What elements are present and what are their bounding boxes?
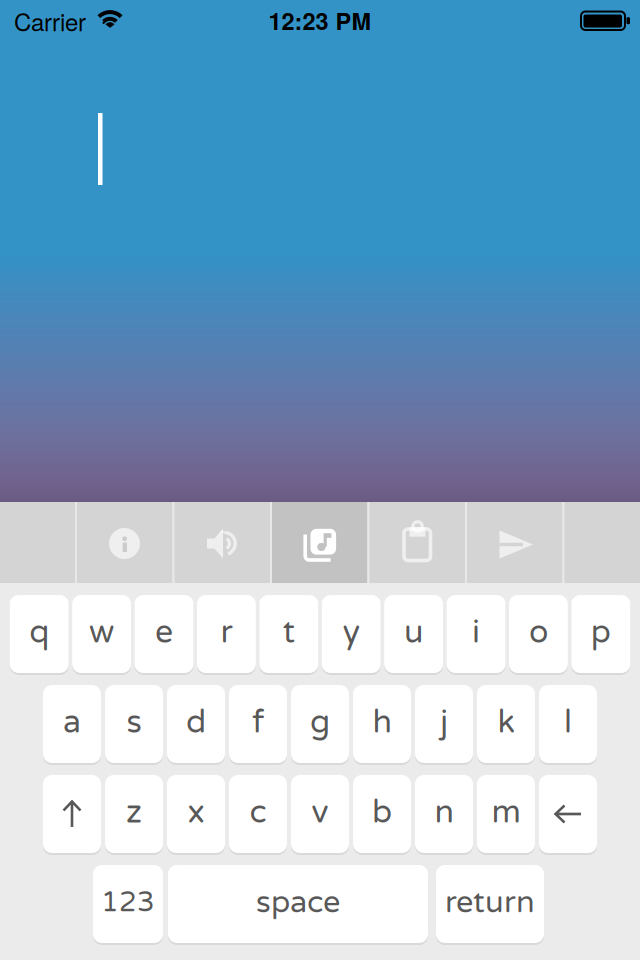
button[interactable]: m: [477, 775, 535, 853]
staticText: k: [497, 703, 514, 742]
button[interactable]: Volume: [172, 502, 270, 583]
button[interactable]: c: [229, 775, 287, 853]
button[interactable]: f: [229, 685, 287, 763]
staticText: v: [311, 793, 328, 832]
button[interactable]: h: [353, 685, 411, 763]
button[interactable]: r: [197, 595, 256, 673]
staticText: a: [63, 703, 81, 742]
button[interactable]: return: [436, 865, 544, 943]
button[interactable]: x: [167, 775, 225, 853]
button[interactable]: j: [415, 685, 473, 763]
staticText: l: [564, 703, 572, 742]
button[interactable]: Shift: [43, 775, 101, 853]
staticText: m: [491, 793, 520, 832]
button[interactable]: g: [291, 685, 349, 763]
button[interactable]: Send: [465, 502, 562, 583]
staticText: i: [472, 613, 480, 652]
staticText: g: [310, 703, 330, 742]
staticText: b: [372, 793, 392, 832]
staticText: x: [187, 793, 204, 832]
staticText: p: [591, 613, 611, 652]
staticText: d: [186, 703, 206, 742]
staticText: r: [220, 613, 232, 652]
button[interactable]: Delete: [539, 775, 597, 853]
staticText: h: [372, 703, 391, 742]
button[interactable]: t: [259, 595, 318, 673]
button[interactable]: Info: [75, 502, 172, 583]
staticText: n: [434, 793, 453, 832]
staticText: 12:23 PM: [268, 4, 371, 37]
staticText: j: [440, 703, 448, 742]
staticText: q: [29, 613, 49, 652]
staticText: y: [343, 613, 360, 652]
button[interactable]: s: [105, 685, 163, 763]
button[interactable]: z: [105, 775, 163, 853]
staticText: s: [126, 703, 141, 742]
button[interactable]: b: [353, 775, 411, 853]
button[interactable]: e: [134, 595, 193, 673]
staticText: u: [404, 613, 423, 652]
button[interactable]: a: [43, 685, 101, 763]
button[interactable]: w: [72, 595, 131, 673]
staticText: c: [249, 793, 266, 832]
button[interactable]: l: [539, 685, 597, 763]
button[interactable]: u: [384, 595, 443, 673]
button[interactable]: v: [291, 775, 349, 853]
button[interactable]: y: [322, 595, 381, 673]
button[interactable]: q: [10, 595, 69, 673]
staticText: space: [256, 884, 340, 921]
staticText: f: [252, 703, 264, 742]
button[interactable]: Music library: [270, 502, 367, 583]
button[interactable]: k: [477, 685, 535, 763]
button[interactable]: o: [509, 595, 568, 673]
staticText: w: [89, 613, 114, 652]
staticText: t: [283, 613, 295, 652]
staticText: Carrier: [14, 4, 86, 38]
button[interactable]: space: [168, 865, 428, 943]
button[interactable]: d: [167, 685, 225, 763]
staticText: return: [445, 884, 535, 921]
staticText: 123: [101, 886, 155, 919]
button[interactable]: p: [571, 595, 630, 673]
button[interactable]: n: [415, 775, 473, 853]
staticText: z: [126, 793, 142, 832]
button[interactable]: i: [446, 595, 505, 673]
button[interactable]: 123: [93, 865, 163, 943]
button[interactable]: Paste: [367, 502, 465, 583]
staticText: e: [155, 613, 173, 652]
staticText: o: [529, 613, 548, 652]
